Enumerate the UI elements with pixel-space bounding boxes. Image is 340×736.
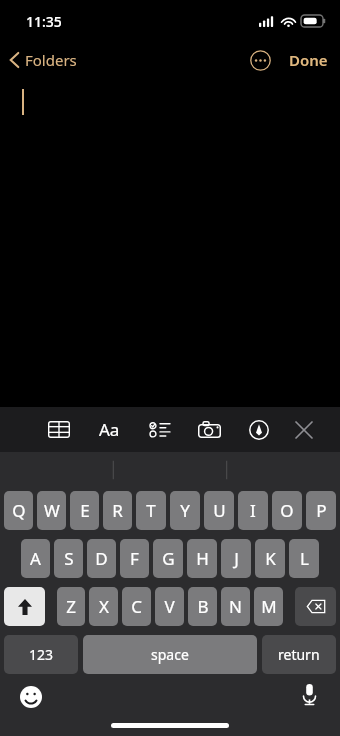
button[interactable]: return xyxy=(262,635,336,674)
staticText: R xyxy=(112,499,123,522)
button[interactable]: Folders xyxy=(0,46,87,74)
button[interactable]: Q xyxy=(4,491,33,530)
button[interactable]: V xyxy=(155,587,184,626)
button[interactable]: Camera xyxy=(184,407,234,452)
button[interactable]: K xyxy=(255,539,285,578)
button[interactable]: M xyxy=(254,587,283,626)
staticText: J xyxy=(234,547,239,570)
button[interactable]: Markup xyxy=(234,407,284,452)
staticText: S xyxy=(64,547,74,570)
staticText: U xyxy=(213,499,226,522)
button[interactable]: C xyxy=(122,587,151,626)
staticText: Folders xyxy=(25,50,77,70)
button[interactable]: O xyxy=(272,491,302,530)
button[interactable]: F xyxy=(120,539,149,578)
button[interactable]: Checklist xyxy=(134,407,184,452)
button[interactable]: J xyxy=(221,539,251,578)
button[interactable]: B xyxy=(188,587,217,626)
staticText: I xyxy=(250,499,256,522)
staticText: Done xyxy=(289,50,328,70)
button[interactable]: G xyxy=(153,539,183,578)
staticText: P xyxy=(316,499,327,522)
button[interactable]: H xyxy=(187,539,217,578)
staticText: N xyxy=(229,595,242,618)
button[interactable]: Close keyboard xyxy=(284,410,324,450)
staticText: space xyxy=(151,645,189,664)
button[interactable]: W xyxy=(37,491,66,530)
staticText: M xyxy=(261,595,277,618)
staticText: G xyxy=(162,547,175,570)
staticText: E xyxy=(80,499,90,522)
staticText: B xyxy=(197,595,209,618)
staticText: X xyxy=(99,595,109,618)
staticText: K xyxy=(265,547,276,570)
button[interactable]: E xyxy=(70,491,99,530)
button[interactable]: U xyxy=(204,491,234,530)
staticText: Aa xyxy=(99,418,120,441)
button[interactable]: Dictation xyxy=(292,678,326,712)
staticText: O xyxy=(280,499,294,522)
button[interactable]: Table xyxy=(34,407,84,452)
staticText: 11:35 xyxy=(26,12,62,31)
button[interactable]: space xyxy=(83,635,257,674)
staticText: return xyxy=(278,645,320,664)
button[interactable]: N xyxy=(221,587,250,626)
button[interactable]: T xyxy=(136,491,166,530)
button[interactable]: A xyxy=(21,539,50,578)
button[interactable]: Z xyxy=(57,587,85,626)
button[interactable]: D xyxy=(87,539,116,578)
button[interactable]: Y xyxy=(170,491,200,530)
button[interactable]: Shift xyxy=(4,587,45,626)
staticText: Z xyxy=(66,595,76,618)
staticText: L xyxy=(300,547,309,570)
button[interactable]: Emoji xyxy=(14,680,48,714)
button[interactable]: I xyxy=(238,491,268,530)
staticText: T xyxy=(146,499,156,522)
staticText: V xyxy=(164,595,175,618)
button[interactable]: Backspace xyxy=(295,587,336,626)
staticText: H xyxy=(196,547,209,570)
staticText: C xyxy=(131,595,142,618)
staticText: D xyxy=(95,547,108,570)
staticText: 123 xyxy=(29,645,54,664)
button[interactable]: X xyxy=(89,587,118,626)
staticText: W xyxy=(44,499,60,522)
button[interactable]: R xyxy=(103,491,132,530)
button[interactable]: L xyxy=(289,539,319,578)
button[interactable]: P xyxy=(306,491,336,530)
staticText: A xyxy=(30,547,41,570)
staticText: Q xyxy=(12,499,26,522)
button[interactable]: S xyxy=(54,539,83,578)
button[interactable]: More options xyxy=(243,43,277,77)
staticText: Y xyxy=(180,499,190,522)
button[interactable]: 123 xyxy=(4,635,78,674)
button[interactable]: Done xyxy=(277,44,340,76)
staticText: F xyxy=(130,547,139,570)
button[interactable]: Text format xyxy=(84,407,134,452)
